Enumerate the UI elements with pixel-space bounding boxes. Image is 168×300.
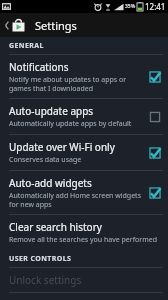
staticText: Conserves data usage — [9, 155, 82, 165]
staticText: Unlock settings — [9, 273, 82, 287]
staticText: Settings — [35, 18, 77, 33]
button[interactable]: Clear search history — [0, 215, 168, 250]
staticText: Automatically add Home screen widgets fo… — [9, 191, 141, 209]
button[interactable]: Auto-update apps — [0, 99, 168, 134]
button[interactable]: Update over Wi-Fi only — [0, 135, 168, 170]
staticText: Auto-update apps — [9, 104, 94, 118]
button[interactable]: Navigate up — [0, 13, 30, 37]
staticText: Automatically update apps by default — [9, 119, 132, 129]
staticText: USER CONTROLS — [9, 254, 72, 264]
staticText: 12:41 — [145, 1, 166, 12]
staticText: Remove all the searches you have perform… — [9, 235, 158, 245]
staticText: Notify me about updates to apps or games… — [9, 75, 141, 93]
staticText: Update over Wi-Fi only — [9, 140, 115, 154]
button[interactable]: Notifications — [0, 55, 168, 98]
button[interactable]: Checked — [147, 185, 162, 200]
button[interactable]: Checked — [147, 69, 162, 84]
staticText: Notifications — [9, 60, 69, 74]
button[interactable]: Unchecked — [147, 109, 162, 124]
staticText: 35% — [125, 3, 136, 10]
button[interactable]: Unlock settings — [0, 268, 168, 292]
staticText: GENERAL — [9, 41, 44, 51]
button[interactable]: Checked — [147, 145, 162, 160]
button[interactable]: Auto-add widgets — [0, 171, 168, 214]
staticText: Clear search history — [9, 220, 102, 234]
staticText: Auto-add widgets — [9, 176, 92, 190]
